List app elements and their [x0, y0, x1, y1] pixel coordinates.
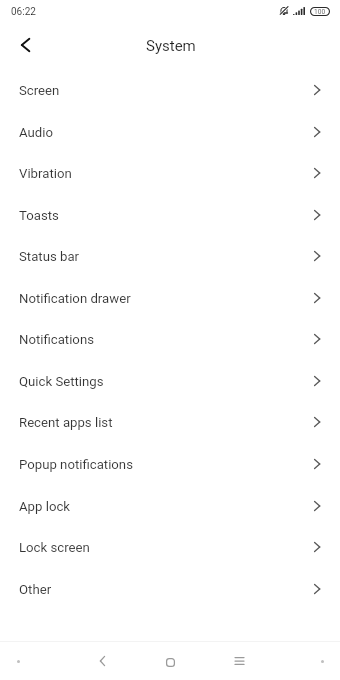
button[interactable]: App lock: [0, 485, 340, 527]
button[interactable]: Vibration: [0, 152, 340, 194]
staticText: 06:22: [11, 6, 36, 18]
button[interactable]: Back: [4, 24, 46, 66]
button[interactable]: Recent apps: [209, 642, 269, 680]
button[interactable]: Home: [140, 642, 200, 680]
button[interactable]: Other: [0, 568, 340, 610]
button[interactable]: Notification drawer: [0, 277, 340, 319]
button[interactable]: Lock screen: [0, 526, 340, 568]
staticText: System: [146, 37, 196, 55]
staticText: Quick Settings: [19, 374, 104, 389]
staticText: Screen: [19, 83, 60, 98]
button[interactable]: More options: [304, 642, 340, 680]
staticText: Notifications: [19, 332, 94, 347]
staticText: Notification drawer: [19, 291, 131, 306]
staticText: App lock: [19, 499, 70, 514]
button[interactable]: Toasts: [0, 194, 340, 236]
staticText: Status bar: [19, 249, 80, 264]
button[interactable]: Audio: [0, 111, 340, 153]
staticText: Toasts: [19, 208, 59, 223]
staticText: Vibration: [19, 166, 72, 181]
button[interactable]: Notifications: [0, 318, 340, 360]
button[interactable]: Screen: [0, 69, 340, 111]
button[interactable]: Status bar: [0, 235, 340, 277]
button[interactable]: Hide navigation bar: [0, 642, 36, 680]
button[interactable]: Quick Settings: [0, 360, 340, 402]
staticText: Other: [19, 582, 52, 597]
staticText: Audio: [19, 125, 53, 140]
staticText: Lock screen: [19, 540, 90, 555]
staticText: 100: [314, 8, 326, 16]
staticText: Popup notifications: [19, 457, 133, 472]
staticText: Recent apps list: [19, 415, 113, 430]
button[interactable]: Recent apps list: [0, 401, 340, 443]
button[interactable]: Back: [71, 642, 131, 680]
button[interactable]: Popup notifications: [0, 443, 340, 485]
